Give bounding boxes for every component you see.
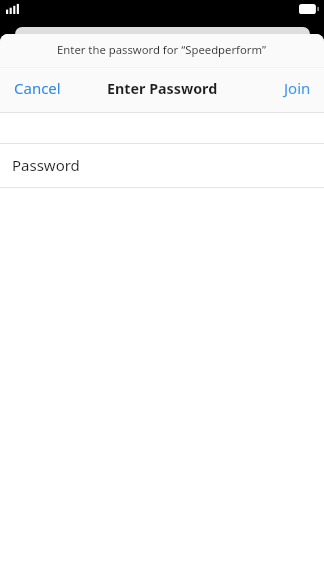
- staticText: Password: [12, 155, 80, 175]
- staticText: Enter Password: [107, 79, 218, 98]
- button[interactable]: Password: [0, 144, 324, 187]
- staticText: Cancel: [14, 78, 61, 98]
- other: Battery full: [299, 4, 319, 14]
- button[interactable]: Cancel: [0, 69, 73, 111]
- other: Cellular signal: [6, 4, 19, 14]
- staticText: Enter the password for “Speedperform”: [57, 42, 266, 57]
- button[interactable]: Join: [272, 69, 324, 111]
- staticText: Join: [284, 78, 311, 98]
